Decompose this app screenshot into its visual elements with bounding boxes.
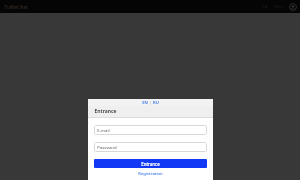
- staticText: E-mail: [97, 127, 110, 133]
- button[interactable]: Registration: [94, 171, 207, 177]
- staticText: Entrance: [94, 108, 117, 115]
- staticText: EN: [142, 100, 148, 106]
- button[interactable]: EN: [141, 100, 149, 106]
- button[interactable]: EN: [260, 2, 270, 11]
- button[interactable]: Account: [288, 2, 297, 11]
- staticText: RU: [153, 100, 159, 106]
- staticText: Password: [97, 144, 117, 150]
- staticText: Entrance: [141, 161, 160, 167]
- staticText: EN: [262, 4, 268, 9]
- button[interactable]: Entrance: [94, 159, 207, 168]
- staticText: TraNet Net: [4, 4, 28, 10]
- staticText: Registration: [138, 171, 163, 177]
- staticText: Help: [274, 4, 283, 9]
- button[interactable]: RU: [152, 100, 160, 106]
- staticText: |: [149, 100, 152, 106]
- button[interactable]: Password: [94, 142, 207, 152]
- button[interactable]: E-mail: [94, 125, 207, 135]
- button[interactable]: Help: [272, 2, 285, 11]
- button[interactable]: TraNet Net: [3, 3, 29, 11]
